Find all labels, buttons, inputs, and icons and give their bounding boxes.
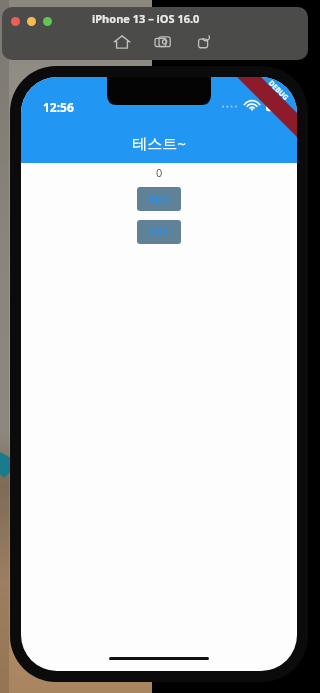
button[interactable] <box>27 17 36 26</box>
button[interactable]: Home <box>113 33 131 51</box>
staticText: 12:56 <box>43 99 74 115</box>
staticText: 테스트~ <box>132 133 186 153</box>
button[interactable] <box>11 17 20 26</box>
button[interactable] <box>43 17 52 26</box>
staticText: DEBUG <box>266 79 291 103</box>
button[interactable]: Screenshot <box>154 33 172 51</box>
staticText: 0 <box>156 165 163 180</box>
staticText: iPhone 13 – iOS 16.0 <box>92 11 200 26</box>
button[interactable]: Rotate <box>195 33 213 51</box>
button[interactable]: ADD <box>137 187 181 211</box>
button[interactable]: SUB <box>137 220 181 244</box>
staticText: SUB <box>149 225 169 239</box>
staticText: ADD <box>148 192 170 206</box>
